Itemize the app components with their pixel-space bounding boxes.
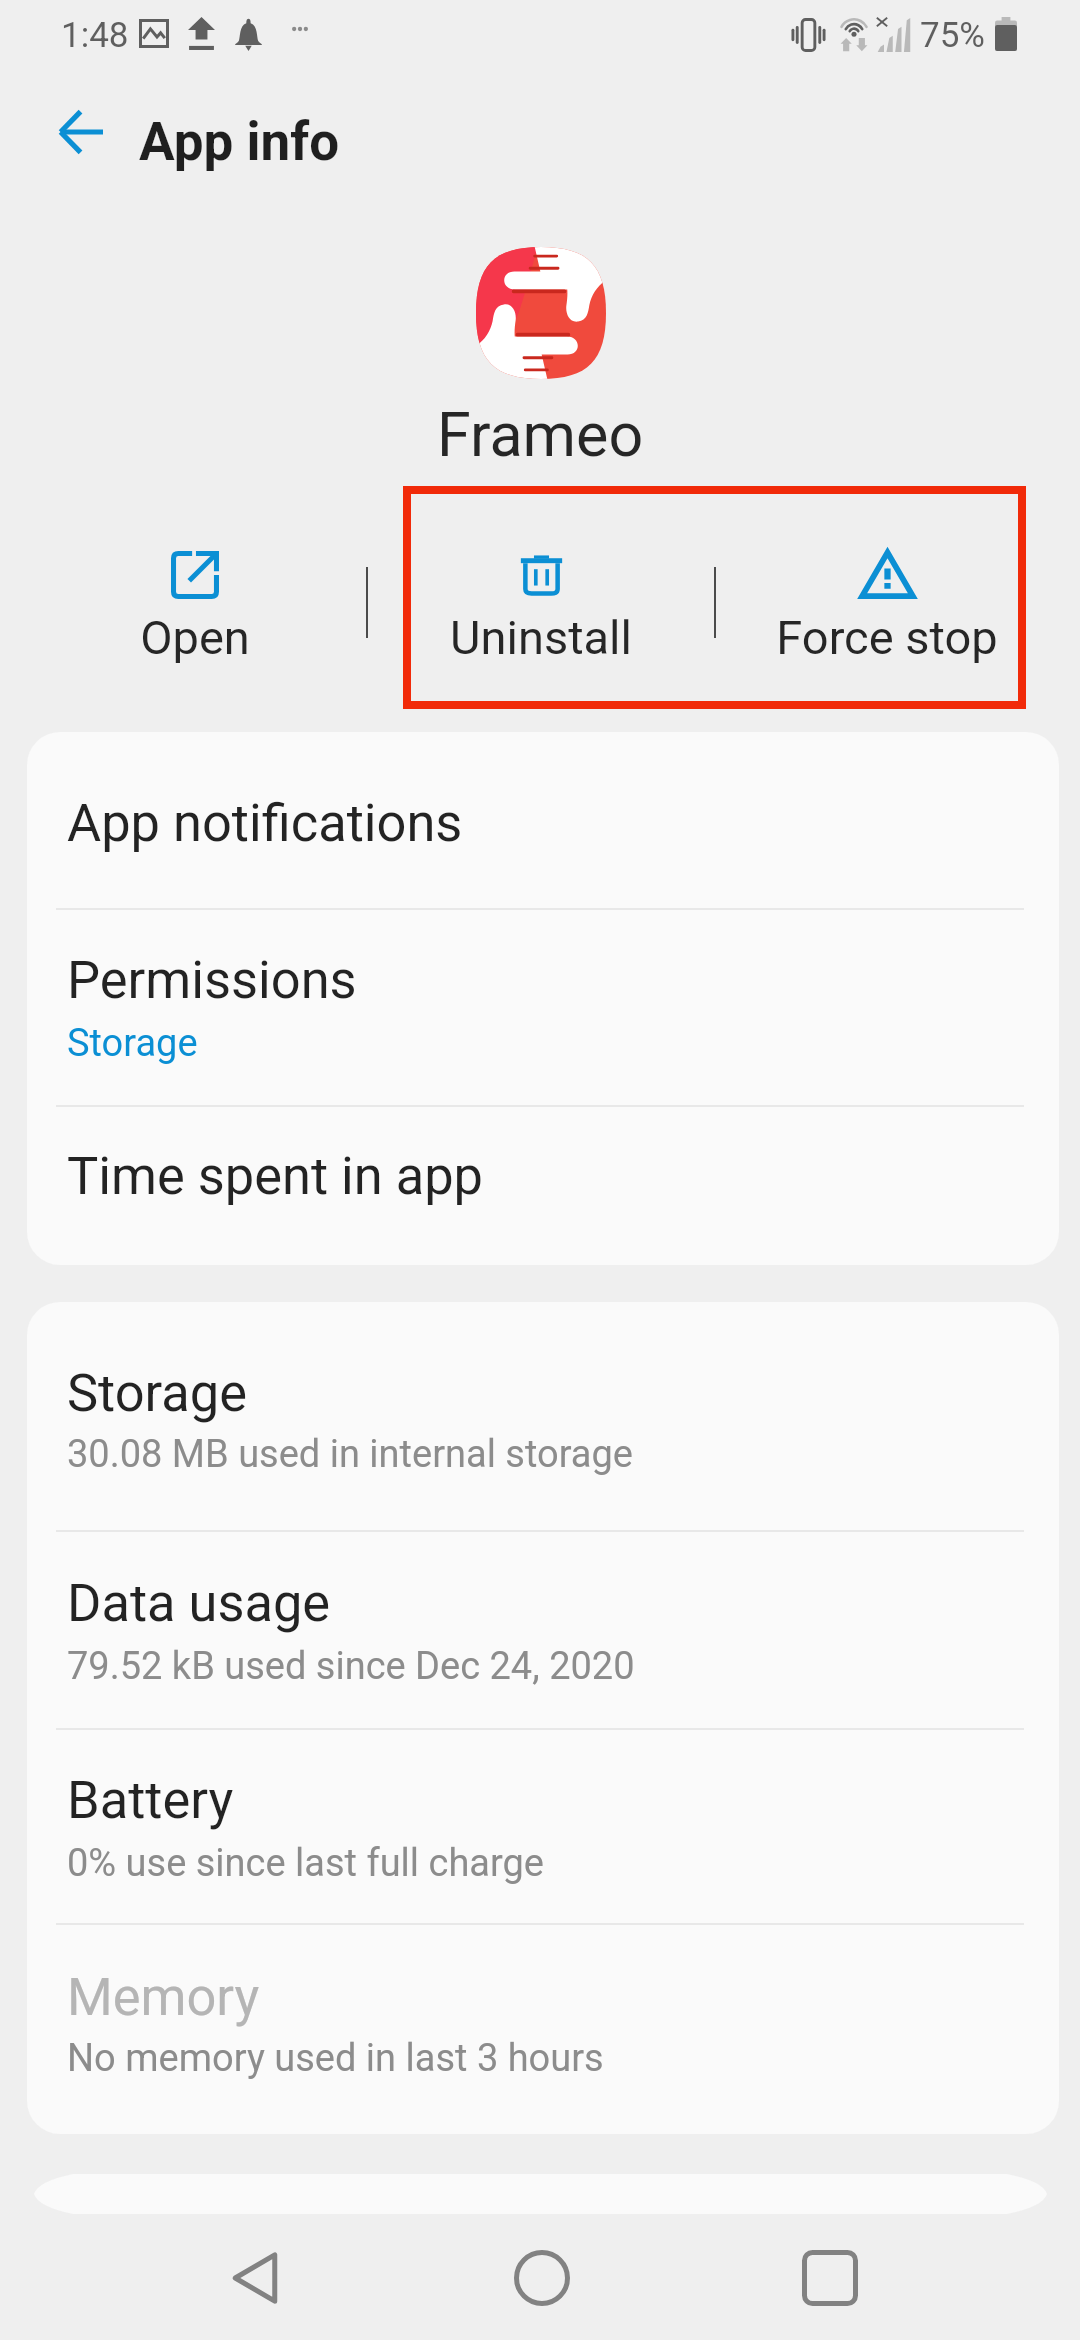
staticText: Permissions <box>67 949 357 1010</box>
staticText: Memory <box>67 1966 260 2027</box>
staticText: Battery <box>67 1769 234 1830</box>
button[interactable] <box>27 1728 1059 1923</box>
staticText: Storage <box>67 1021 198 1066</box>
staticText: App notifications <box>67 792 463 853</box>
staticText: 1:48 <box>61 15 129 56</box>
button[interactable] <box>27 1105 1059 1265</box>
staticText: 75% <box>920 15 985 56</box>
button[interactable]: Back <box>26 78 134 186</box>
button[interactable] <box>27 732 1059 908</box>
button[interactable]: Back <box>111 2216 398 2340</box>
staticText: App info <box>139 111 340 173</box>
staticText: 30.08 MB used in internal storage <box>67 1432 634 1477</box>
button[interactable] <box>27 1530 1059 1728</box>
staticText: Time spent in app <box>67 1145 484 1206</box>
staticText: Data usage <box>67 1572 331 1633</box>
staticText: Frameo <box>437 399 644 470</box>
button[interactable]: Force stop <box>714 486 1060 709</box>
staticText: No memory used in last 3 hours <box>67 2036 604 2081</box>
button[interactable] <box>27 1923 1059 2134</box>
button[interactable]: Uninstall <box>368 486 714 709</box>
staticText: 79.52 kB used since Dec 24, 2020 <box>67 1644 635 1689</box>
button[interactable]: Open <box>21 486 368 709</box>
button[interactable] <box>27 1302 1059 1530</box>
staticText: Force stop <box>776 610 998 665</box>
staticText: Storage <box>67 1362 248 1423</box>
staticText: Open <box>140 610 250 665</box>
button[interactable]: Home <box>398 2216 686 2340</box>
staticText: Uninstall <box>450 610 632 665</box>
staticText: 0% use since last full charge <box>67 1841 545 1886</box>
button[interactable] <box>27 908 1059 1105</box>
button[interactable]: Recents <box>686 2216 974 2340</box>
